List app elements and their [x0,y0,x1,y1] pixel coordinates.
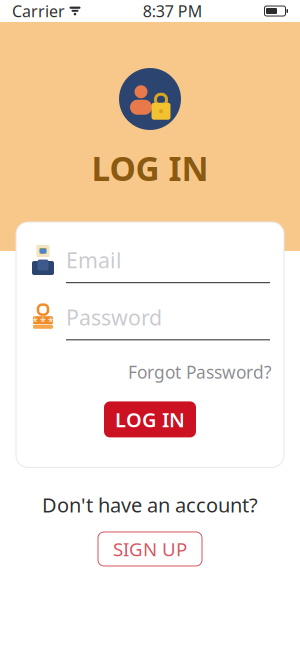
staticText: Email [66,246,122,274]
button[interactable]: Forgot Password? [128,356,272,387]
staticText: Carrier [12,0,65,22]
staticText: Forgot Password? [128,360,272,383]
button[interactable]: LOG IN [104,401,196,437]
staticText: Password [66,303,162,331]
staticText: 8:37 PM [143,0,203,22]
staticText: * [40,314,46,328]
staticText: * [48,314,54,328]
button[interactable]: SIGN UP [98,532,202,566]
staticText: * [32,314,38,328]
staticText: LOG IN [91,146,208,190]
staticText: Don't have an account? [42,491,258,518]
staticText: SIGN UP [113,537,187,561]
staticText: LOG IN [115,406,185,433]
